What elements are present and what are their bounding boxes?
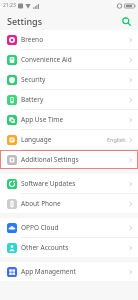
staticText: Software Updates xyxy=(21,179,128,188)
staticText: OPPO Cloud xyxy=(21,223,128,232)
staticText: App Management xyxy=(21,267,128,276)
button[interactable]: Convenience Aid xyxy=(0,50,138,69)
button[interactable]: App Use Time xyxy=(0,110,138,129)
button[interactable]: Security xyxy=(0,70,138,89)
button[interactable]: Software Updates xyxy=(0,174,138,193)
staticText: Additional Settings xyxy=(21,155,128,164)
staticText: Battery xyxy=(21,95,128,104)
button[interactable]: Breeno xyxy=(0,30,138,49)
button[interactable]: Language xyxy=(0,130,138,149)
staticText: Convenience Aid xyxy=(21,55,128,64)
button[interactable]: About Phone xyxy=(0,194,138,213)
button[interactable]: Additional Settings xyxy=(0,150,138,169)
button[interactable]: App Management xyxy=(0,262,138,281)
button[interactable]: Other Accounts xyxy=(0,238,138,257)
button[interactable]: Battery xyxy=(0,90,138,109)
staticText: Settings xyxy=(7,15,43,27)
staticText: About Phone xyxy=(21,199,128,208)
button[interactable]: OPPO Cloud xyxy=(0,218,138,237)
staticText: Other Accounts xyxy=(21,243,128,252)
staticText: Breeno xyxy=(21,35,128,44)
staticText: Security xyxy=(21,75,128,84)
button[interactable]: Search xyxy=(118,13,134,29)
staticText: Language xyxy=(21,135,107,144)
staticText: 21:23 xyxy=(3,2,16,9)
staticText: App Use Time xyxy=(21,115,128,124)
staticText: English xyxy=(107,136,126,143)
